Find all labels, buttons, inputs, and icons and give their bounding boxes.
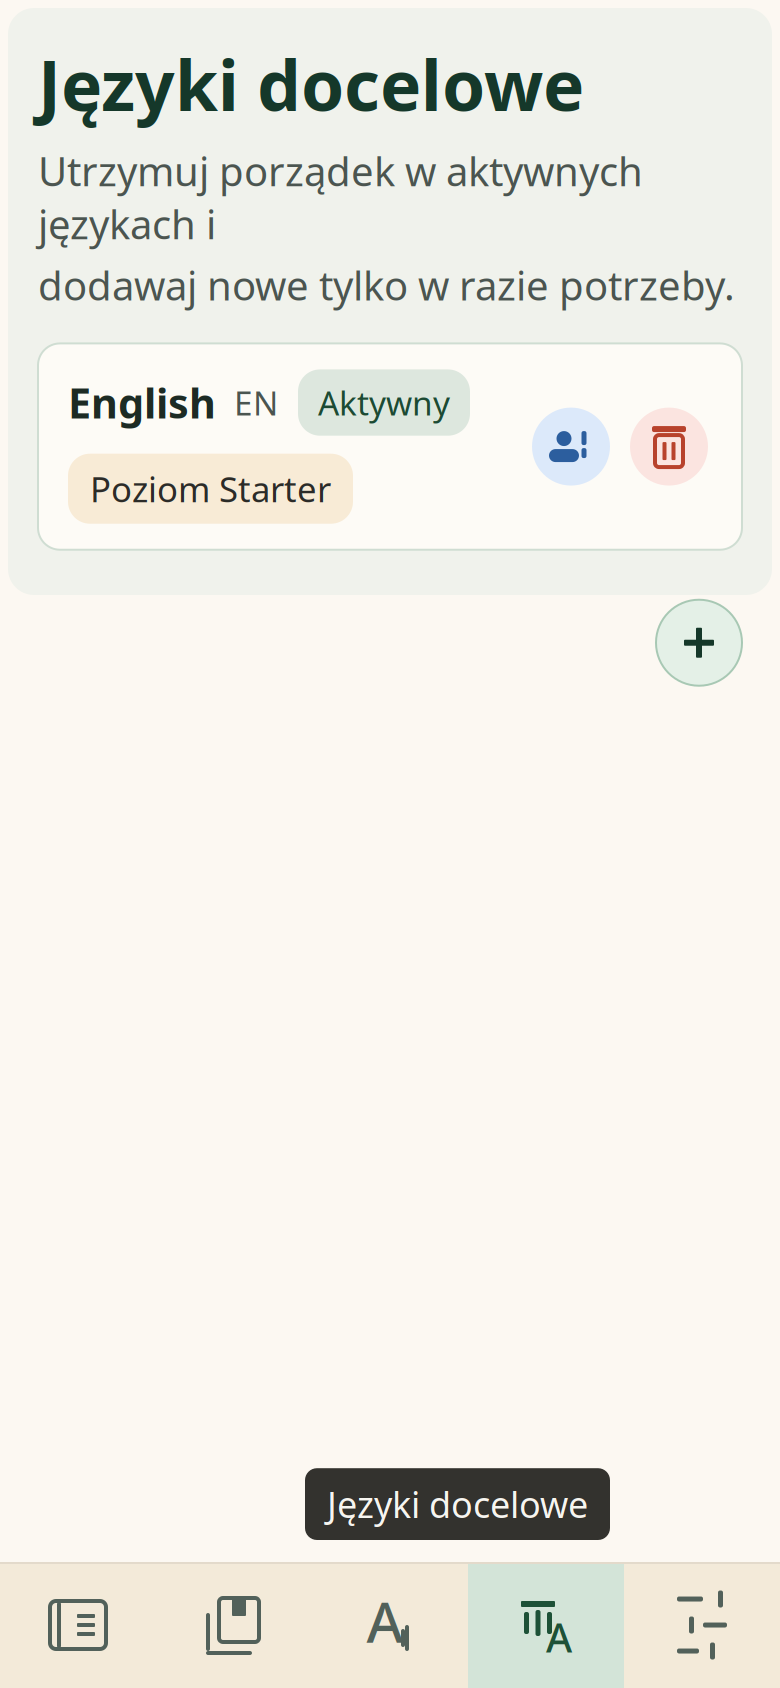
staticText: A: [546, 1610, 572, 1663]
staticText: EN: [234, 380, 278, 425]
staticText: Języki docelowe: [38, 38, 584, 130]
staticText: Aktywny: [318, 380, 450, 425]
staticText: Poziom Starter: [90, 466, 331, 512]
button[interactable]: Języki docelowe: [468, 1562, 624, 1688]
button[interactable]: Usuń język: [630, 408, 708, 486]
staticText: Utrzymuj porządek w aktywnych językach i: [38, 144, 643, 250]
button[interactable]: Dodaj język: [656, 600, 742, 686]
staticText: dodawaj nowe tylko w razie potrzeby.: [38, 258, 735, 311]
button[interactable]: Biblioteka: [156, 1562, 312, 1688]
button[interactable]: Ustawienia: [624, 1562, 780, 1688]
button[interactable]: Sprawdzanie: [312, 1562, 468, 1688]
staticText: English: [68, 375, 216, 430]
button[interactable]: Czytnik: [0, 1562, 156, 1688]
button[interactable]: Odtwórz wymowę: [532, 408, 610, 486]
staticText: A: [366, 1584, 403, 1658]
staticText: Języki docelowe: [327, 1480, 588, 1528]
